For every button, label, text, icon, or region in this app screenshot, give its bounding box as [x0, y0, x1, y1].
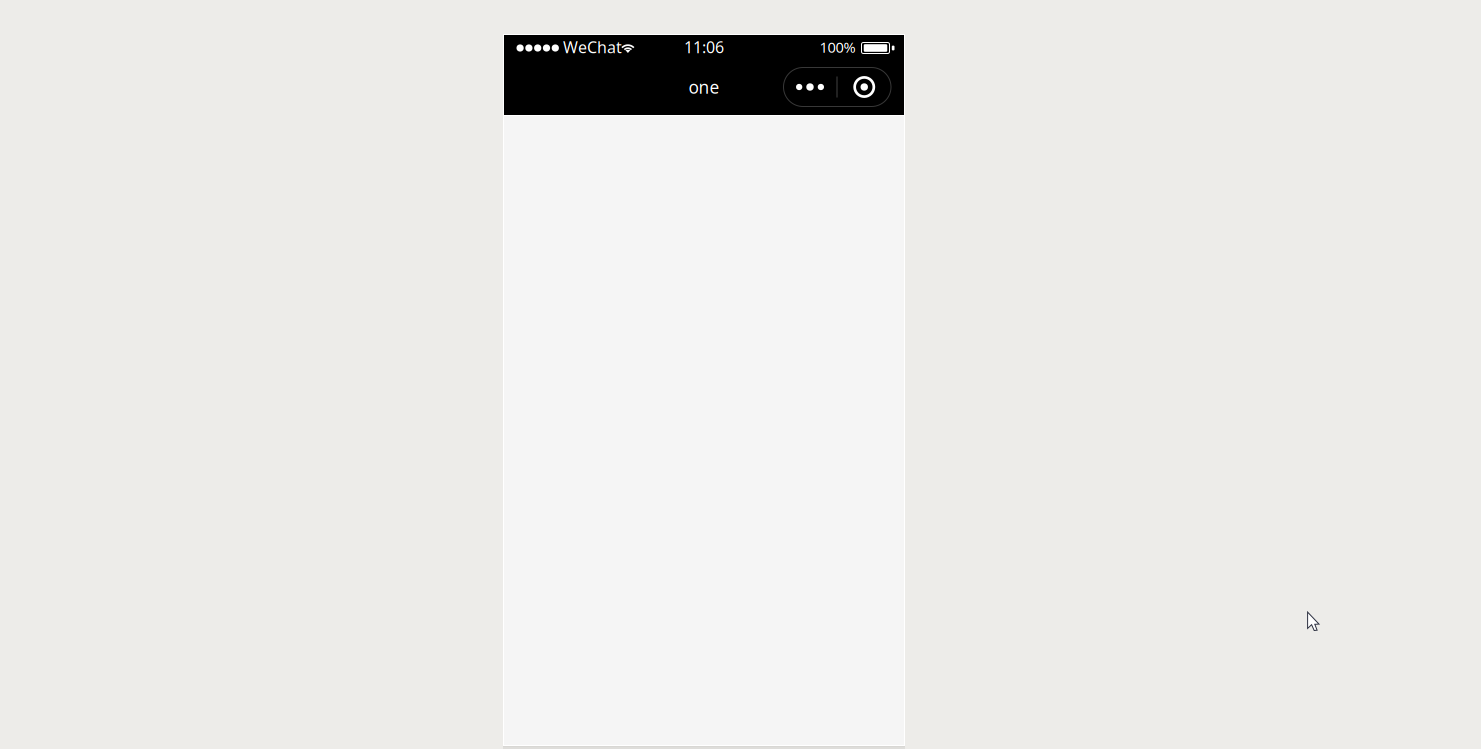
- button[interactable]: More: [783, 67, 836, 106]
- staticText: 100%: [819, 37, 855, 57]
- button[interactable]: Close mini program: [837, 67, 891, 106]
- staticText: WeChat: [563, 36, 622, 58]
- staticText: one: [688, 75, 719, 98]
- staticText: 11:06: [684, 36, 724, 58]
